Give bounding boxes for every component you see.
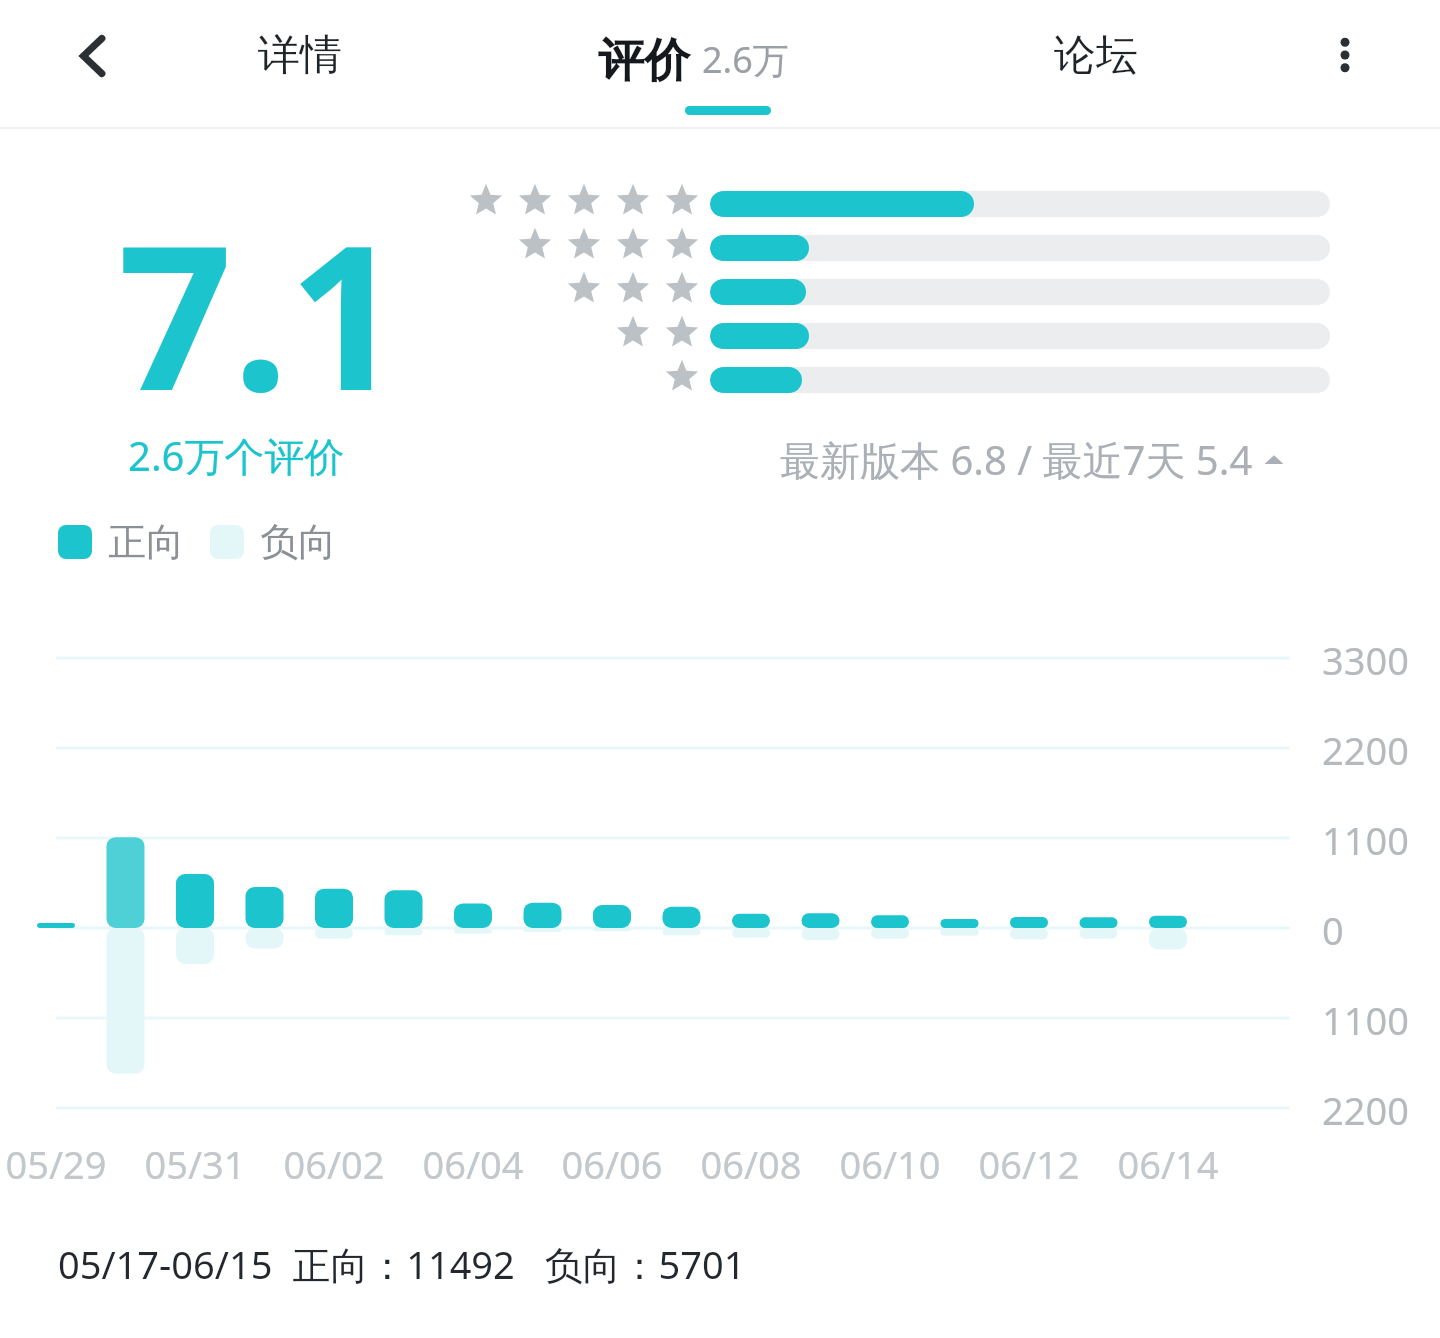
staticText: 负向 [260,518,336,566]
button[interactable]: More options [1300,10,1390,100]
staticText: 1100 [1322,814,1409,866]
staticText: 06/10 [822,1138,958,1190]
staticText: 评价 [598,32,690,90]
staticText: 2.6万个评价 [128,428,345,483]
button[interactable]: 论坛 [1054,16,1138,94]
staticText: 2200 [1322,1084,1409,1136]
staticText: 2200 [1322,724,1409,776]
staticText: 论坛 [1054,29,1138,82]
staticText: 最新版本 6.8 / 最近7天 5.4 [780,432,1253,487]
staticText: 06/06 [544,1138,680,1190]
staticText: 05/31 [127,1138,263,1190]
staticText: 正向 [108,518,184,566]
staticText: 06/02 [266,1138,402,1190]
staticText: 2.6万 [702,35,789,84]
staticText: 06/14 [1100,1138,1236,1190]
button[interactable]: Back [52,14,136,98]
staticText: 06/12 [961,1138,1097,1190]
button[interactable]: 评价 [598,10,789,90]
staticText: 05/17-06/15 正向：11492 负向：5701 [58,1238,746,1290]
staticText: 06/04 [405,1138,541,1190]
staticText: 1100 [1322,994,1409,1046]
staticText: 0 [1322,904,1344,956]
staticText: 3300 [1322,634,1409,686]
staticText: 05/29 [0,1138,124,1190]
staticText: 7.1 [118,176,404,448]
staticText: 06/08 [683,1138,819,1190]
staticText: 详情 [258,29,342,82]
button[interactable]: 详情 [258,16,342,94]
